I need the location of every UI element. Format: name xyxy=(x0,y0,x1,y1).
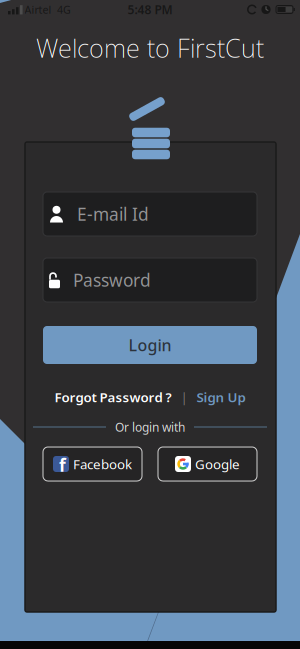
staticText: Google xyxy=(195,455,240,473)
staticText: Or login with xyxy=(115,419,185,435)
staticText: Facebook xyxy=(73,455,132,473)
button[interactable]: Forgot Password ? xyxy=(54,388,171,406)
staticText: Sign Up xyxy=(196,388,245,406)
staticText: | xyxy=(180,388,187,406)
staticText: 5:48 PM xyxy=(127,1,172,17)
staticText: Forgot Password ? xyxy=(54,388,171,406)
staticText: Password xyxy=(73,268,151,291)
button[interactable]: Password xyxy=(43,258,257,302)
button[interactable]: Sign Up xyxy=(196,388,245,406)
button[interactable]: f xyxy=(43,447,142,481)
staticText: Welcome to FirstCut xyxy=(36,31,264,65)
staticText: Login xyxy=(128,334,171,356)
staticText: Airtel xyxy=(24,3,51,17)
staticText: E-mail Id xyxy=(77,202,149,225)
button[interactable]: Google xyxy=(158,447,257,481)
button[interactable]: E-mail Id xyxy=(43,192,257,236)
button[interactable]: Login xyxy=(43,326,257,364)
staticText: f xyxy=(59,453,66,476)
staticText: 4G xyxy=(57,3,71,17)
